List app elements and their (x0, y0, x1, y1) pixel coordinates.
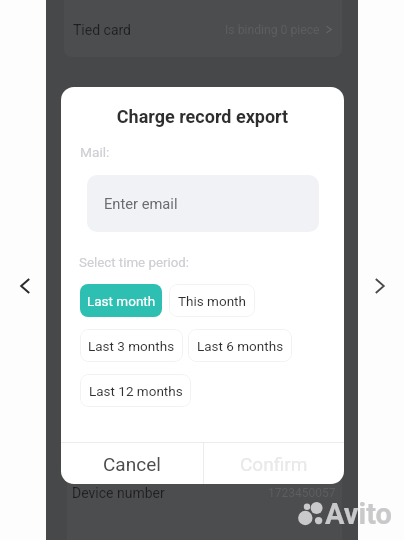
button[interactable]: Last 12 months (80, 374, 191, 407)
button[interactable]: Last 3 months (80, 329, 183, 362)
button[interactable]: Enter email (87, 175, 319, 232)
button[interactable]: This month (169, 284, 255, 317)
staticText: Device number (72, 485, 165, 501)
staticText: Last 6 months (197, 338, 284, 354)
staticText: Select time period: (79, 255, 189, 271)
staticText: Mail: (80, 144, 110, 160)
button[interactable]: Tied card (73, 12, 367, 47)
button[interactable]: Last month (80, 284, 162, 317)
staticText: This month (178, 293, 246, 309)
staticText: Enter email (104, 195, 178, 212)
staticText: Last month (87, 293, 156, 309)
staticText: Last 3 months (88, 338, 175, 354)
staticText: Is binding 0 piece (225, 23, 320, 37)
button[interactable]: Previous image (11, 272, 38, 299)
button[interactable]: Cancel (61, 443, 203, 484)
staticText: Charge record export (61, 106, 344, 127)
button[interactable]: Last 6 months (188, 329, 292, 362)
staticText: Cancel (103, 453, 161, 475)
staticText: Tied card (73, 22, 132, 38)
staticText: 1723450057 (268, 486, 336, 500)
staticText: Avito (325, 497, 392, 529)
button[interactable]: Confirm (204, 443, 344, 484)
button[interactable]: Next image (366, 272, 393, 299)
staticText: Last 12 months (89, 383, 183, 399)
staticText: Confirm (240, 453, 308, 475)
